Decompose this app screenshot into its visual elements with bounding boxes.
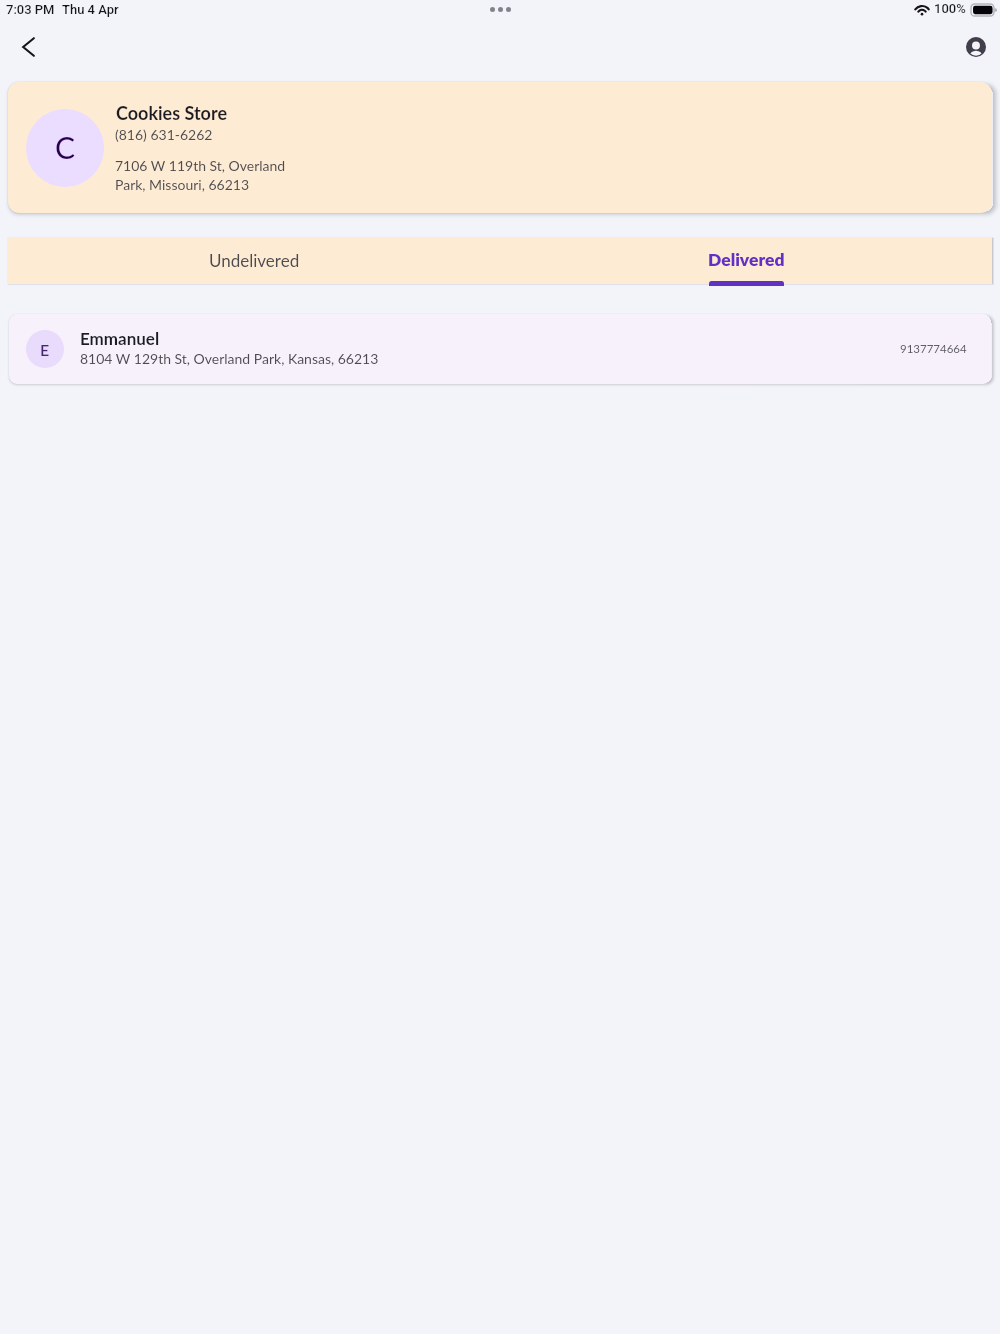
staticText: Park, Missouri, 66213 xyxy=(115,176,250,193)
staticText: 8104 W 129th St, Overland Park, Kansas, … xyxy=(80,350,379,367)
button[interactable]: Account xyxy=(956,27,996,67)
staticText: Cookies Store xyxy=(116,102,227,124)
staticText: 9137774664 xyxy=(900,342,967,356)
button[interactable]: Delivered xyxy=(500,237,992,284)
staticText: E xyxy=(40,340,50,359)
staticText: 7106 W 119th St, Overland xyxy=(115,157,286,174)
staticText: 7:03 PM xyxy=(6,2,55,17)
staticText: 100% xyxy=(934,1,966,16)
button[interactable]: Back xyxy=(9,27,49,67)
staticText: Emmanuel xyxy=(80,328,160,348)
staticText: Undelivered xyxy=(209,250,300,270)
button[interactable]: E xyxy=(9,314,991,384)
button[interactable]: C xyxy=(8,82,992,213)
staticText: (816) 631-6262 xyxy=(115,126,213,143)
staticText: Thu 4 Apr xyxy=(62,2,119,17)
staticText: C xyxy=(55,129,76,165)
staticText: Delivered xyxy=(708,249,785,270)
button[interactable]: Undelivered xyxy=(8,237,500,284)
